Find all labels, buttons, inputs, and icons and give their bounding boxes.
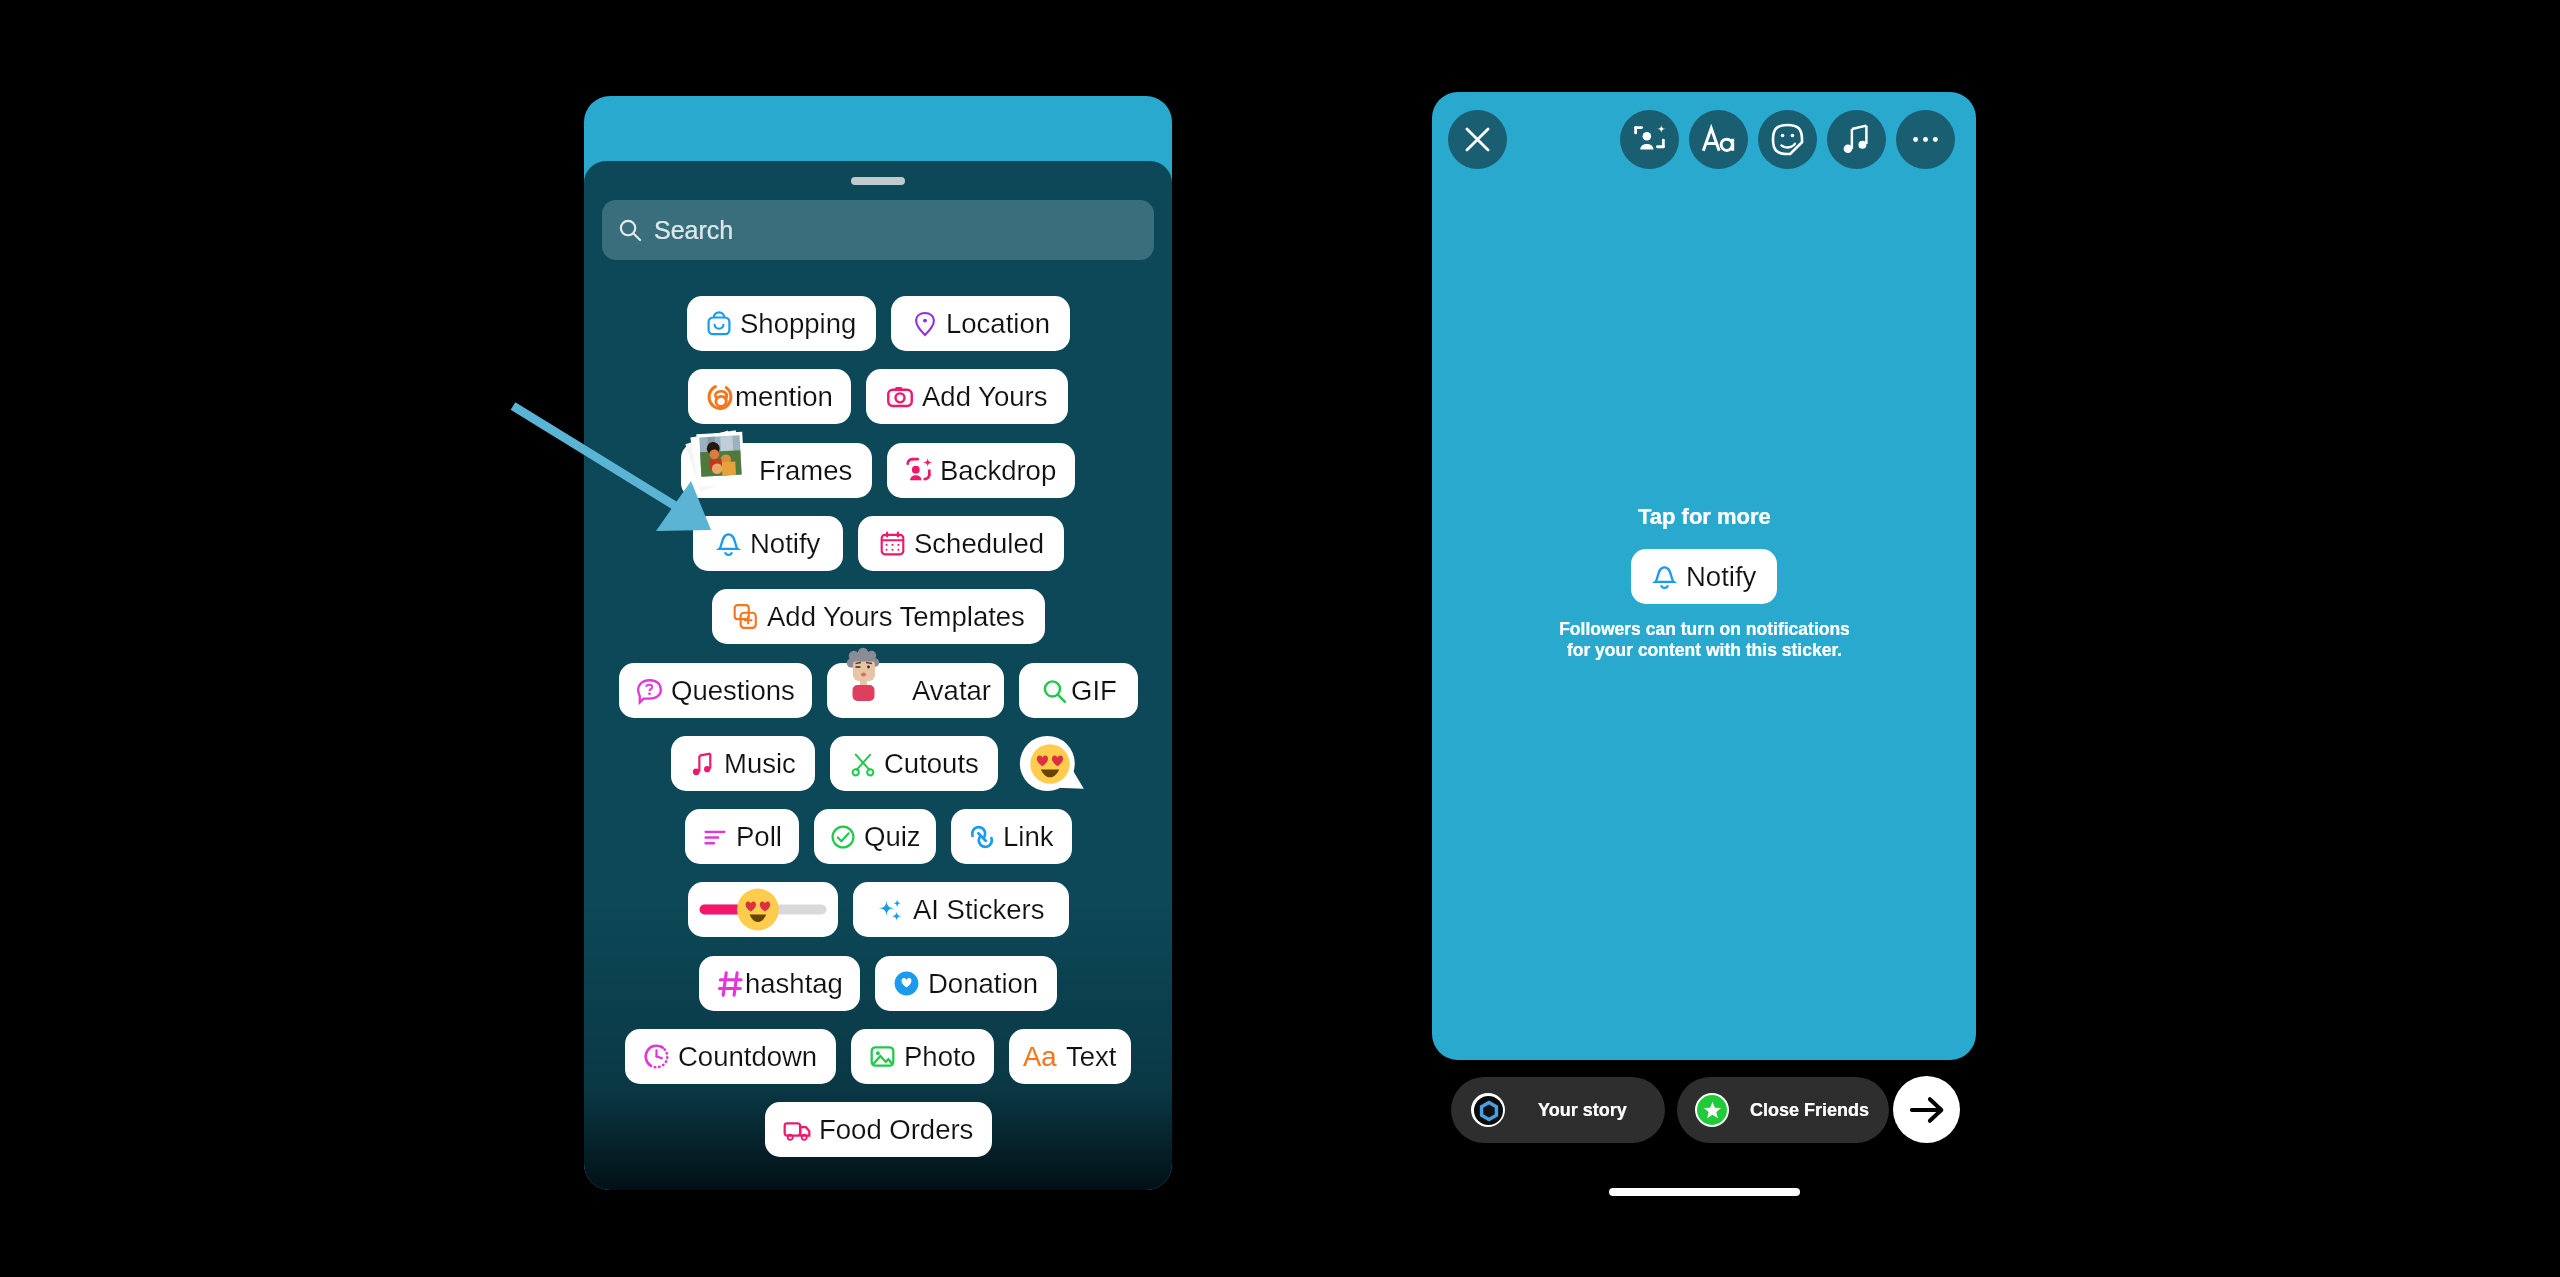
button[interactable]: Emoji slider bbox=[688, 882, 838, 937]
staticText: Tap for more bbox=[1638, 504, 1771, 529]
button[interactable]: Frames bbox=[681, 443, 872, 498]
staticText: Add Yours Templates bbox=[767, 601, 1025, 632]
button[interactable]: Your story bbox=[1451, 1077, 1665, 1143]
button[interactable]: Music bbox=[1827, 110, 1886, 169]
button[interactable]: Search bbox=[602, 200, 1154, 260]
staticText: Poll bbox=[736, 821, 782, 852]
button[interactable]: Countdown bbox=[625, 1029, 836, 1084]
button[interactable]: Food Orders bbox=[765, 1102, 992, 1157]
button[interactable]: mention bbox=[688, 369, 851, 424]
button[interactable]: Link bbox=[951, 809, 1072, 864]
button[interactable]: More bbox=[1896, 110, 1955, 169]
button[interactable]: Location bbox=[891, 296, 1070, 351]
button[interactable]: Poll bbox=[685, 809, 799, 864]
staticText: Location bbox=[946, 308, 1050, 339]
button[interactable]: Backdrop bbox=[887, 443, 1075, 498]
button[interactable]: Photo bbox=[851, 1029, 994, 1084]
button[interactable]: Notify bbox=[693, 516, 843, 571]
staticText: Notify bbox=[1686, 561, 1757, 592]
staticText: Notify bbox=[750, 528, 821, 559]
button[interactable]: Stickers bbox=[1758, 110, 1817, 169]
staticText: Add Yours bbox=[922, 381, 1048, 412]
button[interactable]: hashtag bbox=[699, 956, 860, 1011]
staticText: Countdown bbox=[678, 1041, 818, 1072]
staticText: Music bbox=[724, 748, 796, 779]
staticText: Donation bbox=[928, 968, 1039, 999]
button[interactable]: Add Yours bbox=[866, 369, 1068, 424]
staticText: Your story bbox=[1538, 1100, 1627, 1120]
staticText: hashtag bbox=[745, 968, 843, 999]
button[interactable]: Cutouts bbox=[830, 736, 998, 791]
button[interactable]: Questions bbox=[619, 663, 812, 718]
button[interactable]: Add Yours Templates bbox=[712, 589, 1045, 644]
button[interactable]: Close Friends bbox=[1677, 1077, 1889, 1143]
staticText: Photo bbox=[904, 1041, 976, 1072]
staticText: Text bbox=[1066, 1041, 1117, 1072]
button[interactable]: Emoji sticker bbox=[1013, 736, 1086, 791]
staticText: GIF bbox=[1071, 675, 1117, 706]
button[interactable]: Notify bbox=[1631, 549, 1777, 604]
staticText: Frames bbox=[759, 455, 853, 486]
staticText: Close Friends bbox=[1750, 1100, 1870, 1120]
staticText: Avatar bbox=[912, 675, 991, 706]
button[interactable]: AI Stickers bbox=[853, 882, 1069, 937]
staticText: Followers can turn on notifications for … bbox=[1559, 619, 1850, 660]
staticText: Quiz bbox=[864, 821, 921, 852]
button[interactable]: Backdrop bbox=[1620, 110, 1679, 169]
button[interactable]: Aa bbox=[1009, 1029, 1131, 1084]
staticText: Aa bbox=[1023, 1041, 1057, 1072]
button[interactable]: Donation bbox=[875, 956, 1057, 1011]
staticText: Link bbox=[1003, 821, 1054, 852]
staticText: Questions bbox=[671, 675, 795, 706]
staticText: Backdrop bbox=[940, 455, 1057, 486]
button[interactable]: Close bbox=[1448, 110, 1507, 169]
button[interactable]: Scheduled bbox=[858, 516, 1064, 571]
staticText: Shopping bbox=[740, 308, 857, 339]
staticText: mention bbox=[735, 381, 833, 412]
button[interactable]: Avatar bbox=[827, 663, 1004, 718]
staticText: Search bbox=[654, 216, 734, 244]
button[interactable]: Next bbox=[1893, 1076, 1960, 1143]
button[interactable]: Text bbox=[1689, 110, 1748, 169]
button[interactable]: Shopping bbox=[687, 296, 876, 351]
staticText: Scheduled bbox=[914, 528, 1044, 559]
button[interactable]: Quiz bbox=[814, 809, 936, 864]
button[interactable]: Music bbox=[671, 736, 815, 791]
button[interactable]: GIF bbox=[1019, 663, 1138, 718]
staticText: AI Stickers bbox=[913, 894, 1045, 925]
staticText: Food Orders bbox=[819, 1114, 974, 1145]
staticText: Cutouts bbox=[884, 748, 979, 779]
